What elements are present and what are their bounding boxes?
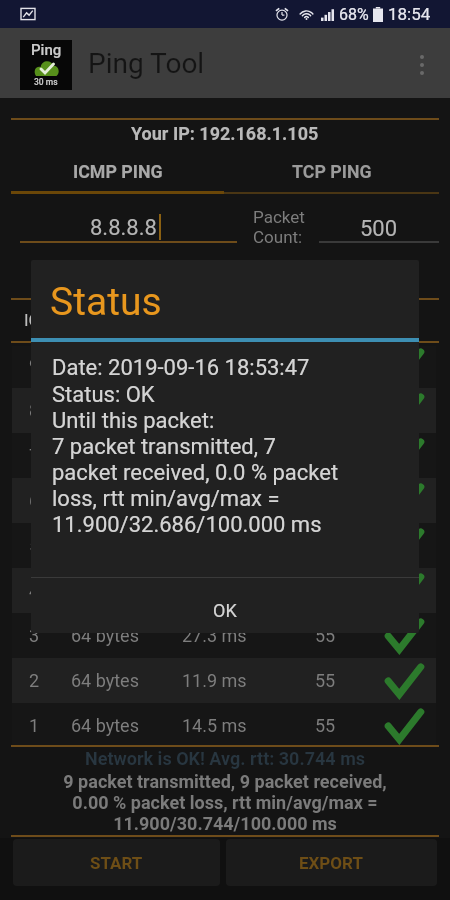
staticText: 55	[315, 625, 336, 646]
button[interactable]: START	[13, 839, 220, 886]
staticText: 68%	[339, 5, 369, 24]
staticText: OK	[213, 600, 237, 621]
button[interactable]: 7	[12, 433, 436, 478]
staticText: Network is OK! Avg. rtt: 30.744 ms	[85, 748, 365, 769]
staticText: 30 ms	[34, 77, 58, 87]
staticText: 64 bytes	[71, 490, 139, 511]
button[interactable]: 9	[12, 346, 436, 388]
staticText: 12.3 ms	[182, 445, 247, 466]
staticText: 64 bytes	[71, 625, 139, 646]
staticText: 55	[315, 670, 336, 691]
staticText: 9 packet transmitted, 9 packet received,…	[0, 771, 450, 834]
staticText: Ping Tool	[88, 47, 205, 80]
staticText: 4	[29, 580, 40, 601]
staticText: EXPORT	[299, 853, 364, 873]
button[interactable]: 2	[12, 658, 436, 703]
staticText: 5	[29, 535, 40, 556]
button[interactable]: 3	[12, 613, 436, 658]
button[interactable]: 8	[12, 388, 436, 433]
staticText: Count:	[253, 227, 303, 247]
staticText: ICMP PING	[73, 161, 163, 182]
button[interactable]: 4	[12, 568, 436, 613]
staticText: 64 bytes	[71, 445, 139, 466]
staticText: 64 bytes	[71, 715, 139, 736]
button[interactable]: EXPORT	[226, 839, 437, 886]
staticText: 9	[29, 355, 40, 376]
staticText: 14.5 ms	[182, 715, 247, 736]
staticText: 1	[29, 715, 40, 736]
button[interactable]: 1	[12, 703, 436, 745]
staticText: 2	[29, 670, 40, 691]
staticText: 18:54	[388, 4, 431, 24]
staticText: 11.9 ms	[182, 670, 247, 691]
staticText: 7	[29, 445, 40, 466]
staticText: Status	[50, 279, 162, 325]
button[interactable]: TCP PING	[225, 156, 439, 186]
staticText: 8.8.8.8	[90, 215, 157, 241]
staticText: ICMP	[24, 310, 66, 330]
button[interactable]: OK	[31, 583, 419, 633]
staticText: Date: 2019-09-16 18:53:47 Status: OK Unt…	[52, 355, 339, 537]
staticText: 3	[29, 625, 40, 646]
button[interactable]: ICMP PING	[11, 156, 225, 186]
staticText: Your IP: 192.168.1.105	[131, 123, 319, 144]
staticText: TCP PING	[292, 161, 372, 182]
staticText: 500	[360, 216, 398, 242]
staticText: 19.5 ms	[182, 490, 247, 511]
button[interactable]: More options	[410, 39, 434, 87]
staticText: 11.9 ms	[182, 355, 247, 376]
staticText: 64 bytes	[71, 400, 139, 421]
staticText: 64 bytes	[71, 670, 139, 691]
staticText: 8	[29, 400, 40, 421]
staticText: 64 bytes	[71, 355, 139, 376]
staticText: 27.3 ms	[182, 625, 247, 646]
staticText: 55	[315, 445, 336, 466]
button[interactable]: 5	[12, 523, 436, 568]
staticText: START	[90, 853, 143, 873]
staticText: 55	[315, 715, 336, 736]
staticText: Ping	[31, 41, 62, 59]
staticText: 100.0 ms	[177, 400, 252, 421]
staticText: Packet	[253, 207, 305, 227]
button[interactable]: 6	[12, 478, 436, 523]
staticText: 6	[29, 490, 40, 511]
